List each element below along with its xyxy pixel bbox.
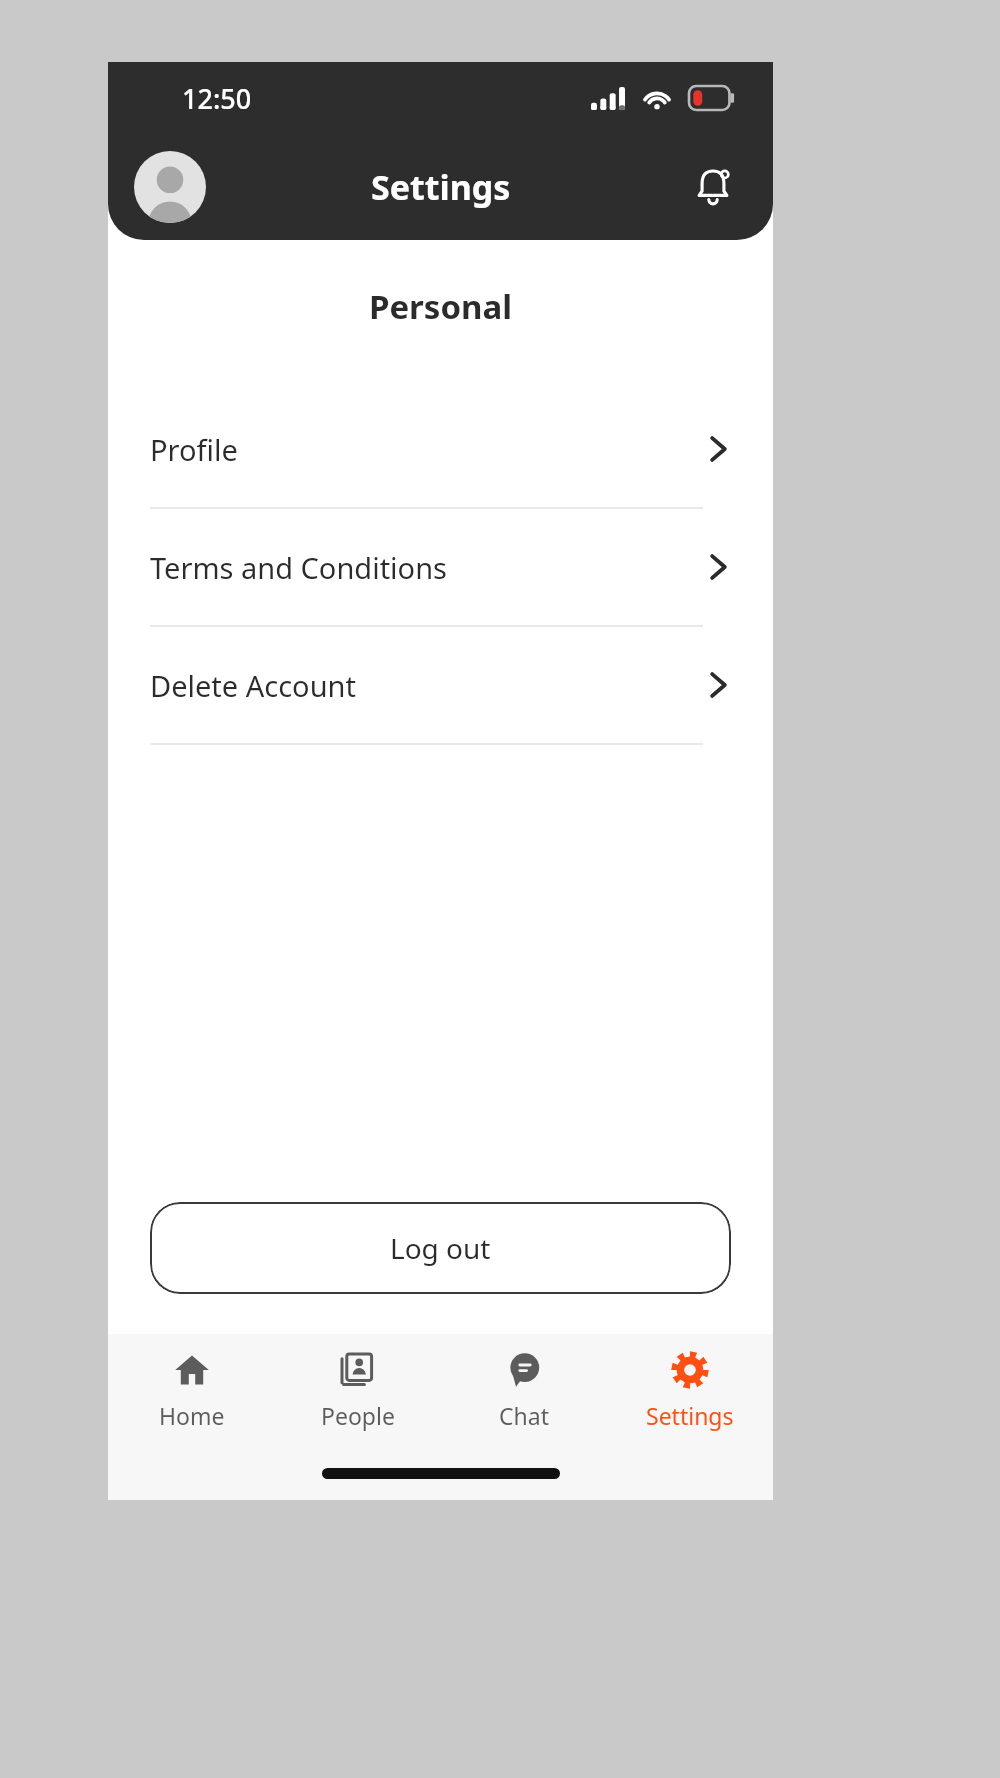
button[interactable]: Notifications [683, 157, 743, 217]
staticText: Delete Account [150, 666, 701, 705]
button[interactable]: Home [108, 1334, 275, 1446]
staticText: Chat [499, 1400, 549, 1431]
button[interactable]: People [275, 1334, 441, 1446]
staticText: Log out [390, 1229, 491, 1267]
button[interactable]: Chat [441, 1334, 607, 1446]
staticText: Home [159, 1400, 225, 1431]
staticText: Settings [646, 1400, 734, 1431]
button[interactable]: Profile avatar [134, 151, 206, 223]
button[interactable]: Profile [108, 391, 773, 509]
staticText: Terms and Conditions [150, 548, 701, 587]
button[interactable]: Delete Account [108, 627, 773, 745]
button[interactable]: Settings [607, 1334, 773, 1446]
staticText: 12:50 [182, 80, 252, 117]
button[interactable]: Log out [150, 1202, 731, 1294]
button[interactable]: Terms and Conditions [108, 509, 773, 627]
staticText: Profile [150, 430, 701, 469]
staticText: Settings [371, 164, 511, 210]
staticText: People [321, 1400, 395, 1431]
staticText: Personal [108, 284, 773, 329]
